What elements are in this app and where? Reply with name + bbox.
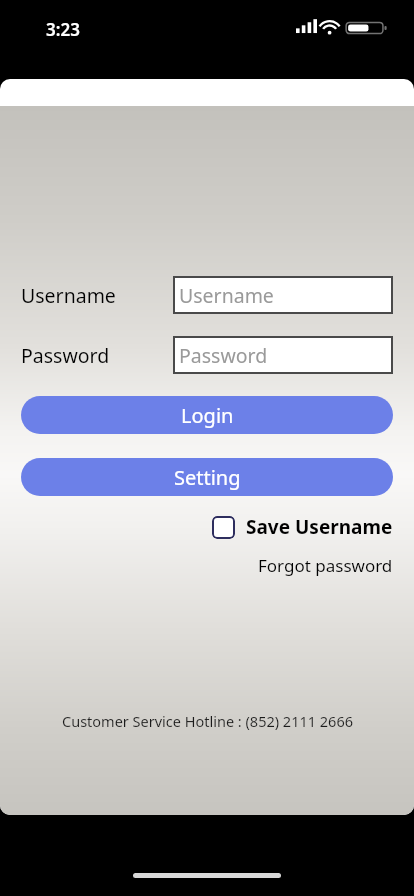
button[interactable]: Login bbox=[21, 396, 393, 434]
button[interactable]: Password bbox=[173, 336, 393, 374]
staticText: Customer Service Hotline : (852) 2111 26… bbox=[62, 711, 353, 731]
staticText: Password bbox=[21, 342, 110, 369]
staticText: Password bbox=[179, 342, 268, 369]
staticText: Username bbox=[179, 282, 274, 309]
staticText: Username bbox=[21, 282, 116, 309]
staticText: Setting bbox=[174, 464, 241, 491]
staticText: 3:23 bbox=[46, 18, 80, 41]
button[interactable]: Save Username bbox=[212, 514, 393, 540]
staticText: Login bbox=[181, 402, 234, 429]
button[interactable]: Forgot password bbox=[258, 554, 393, 577]
button[interactable]: Username bbox=[173, 276, 393, 314]
staticText: Save Username bbox=[246, 514, 393, 540]
button[interactable]: Setting bbox=[21, 458, 393, 496]
